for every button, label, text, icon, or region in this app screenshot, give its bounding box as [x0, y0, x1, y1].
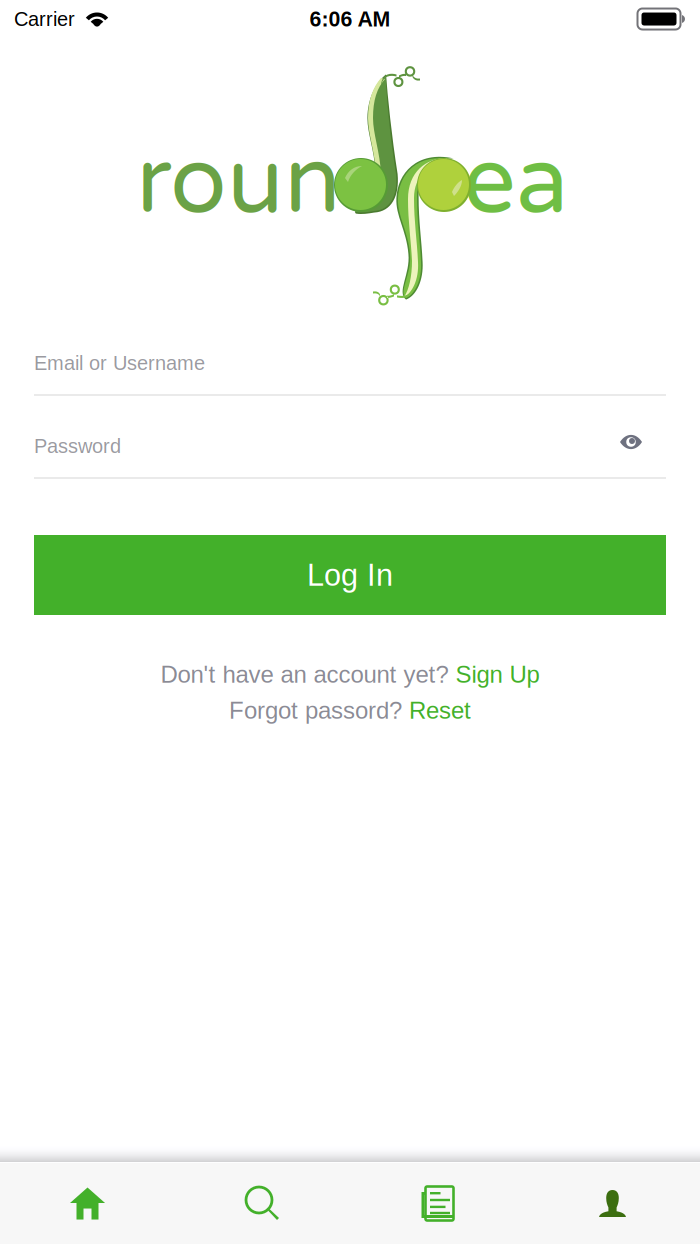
button[interactable]: Search	[175, 1163, 350, 1244]
staticText: roun	[136, 126, 341, 238]
staticText: Password	[34, 435, 121, 457]
staticText: Reset	[409, 697, 471, 724]
button[interactable]: Feed	[350, 1163, 525, 1244]
button[interactable]: Home	[0, 1163, 175, 1244]
staticText: Log In	[307, 558, 393, 592]
staticText: 6:06 AM	[309, 7, 390, 31]
staticText: ea	[463, 126, 568, 238]
button[interactable]: Profile	[525, 1163, 700, 1244]
button[interactable]: Reset	[409, 697, 471, 724]
button[interactable]: Log In	[34, 535, 666, 615]
button[interactable]: Show password	[609, 424, 653, 460]
button[interactable]: Sign Up	[455, 661, 539, 688]
staticText: Forgot passord?	[229, 697, 409, 724]
staticText: Don't have an account yet?	[160, 661, 455, 688]
staticText: Sign Up	[455, 661, 539, 688]
staticText: Carrier	[14, 8, 75, 30]
staticText: Email or Username	[34, 352, 205, 374]
